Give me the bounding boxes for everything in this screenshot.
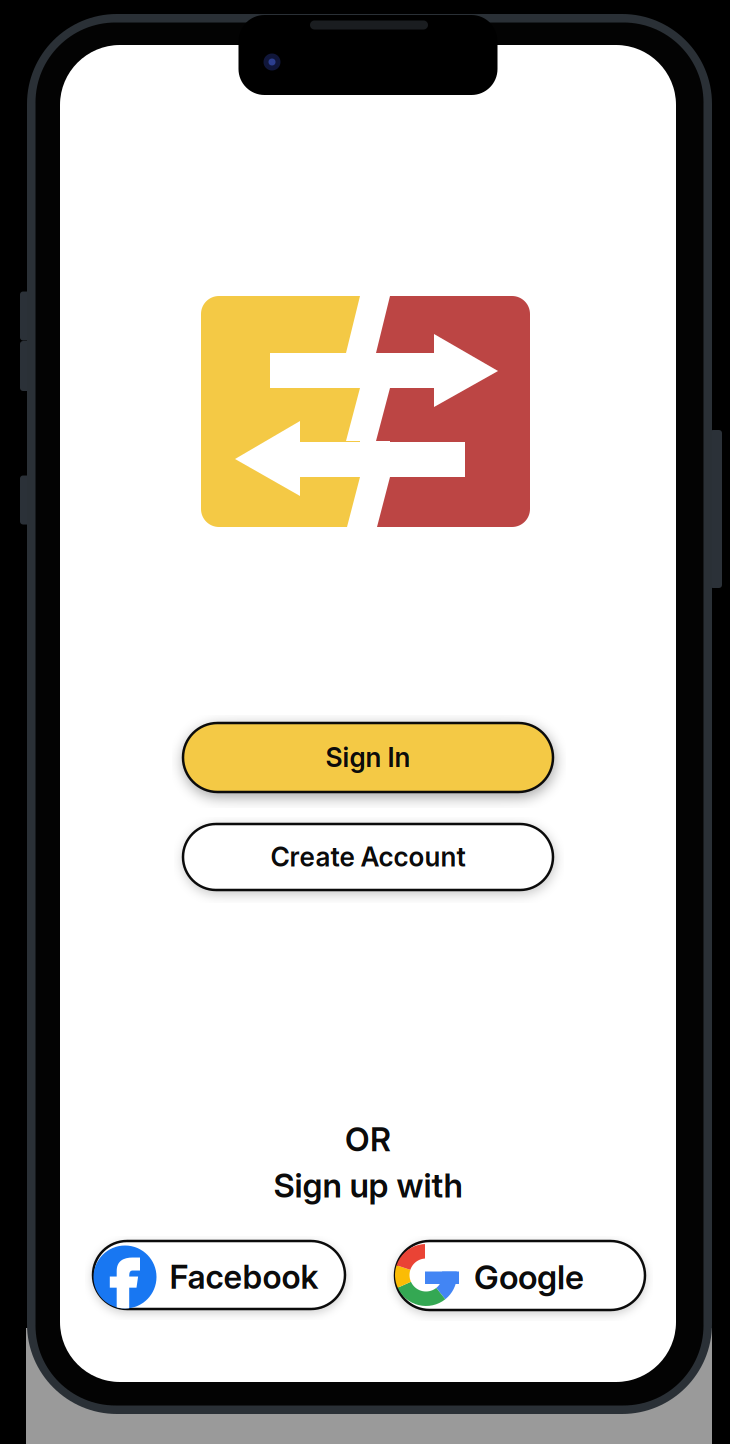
button[interactable]: Sign In bbox=[183, 723, 553, 792]
staticText: OR bbox=[345, 1120, 391, 1159]
staticText: Google bbox=[474, 1257, 584, 1297]
button[interactable]: Google bbox=[395, 1241, 645, 1310]
staticText: Create Account bbox=[270, 841, 465, 873]
staticText: Sign up with bbox=[273, 1165, 462, 1205]
button[interactable]: Create Account bbox=[183, 824, 553, 890]
staticText: Facebook bbox=[169, 1257, 318, 1296]
button[interactable]: Facebook bbox=[93, 1241, 345, 1309]
staticText: Sign In bbox=[325, 741, 410, 773]
